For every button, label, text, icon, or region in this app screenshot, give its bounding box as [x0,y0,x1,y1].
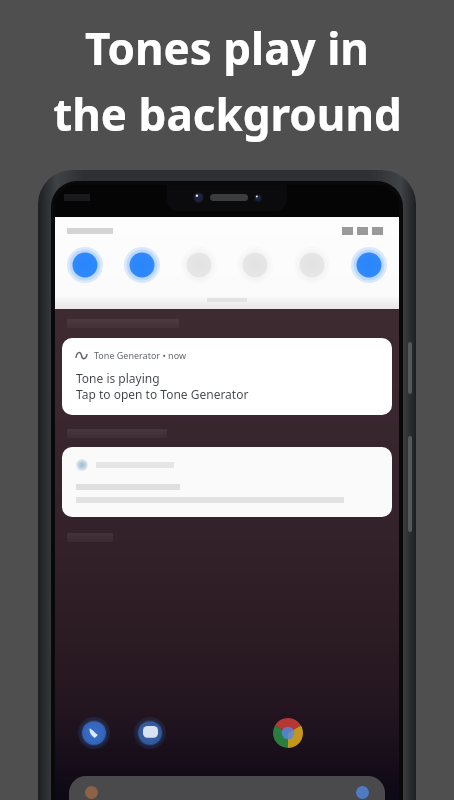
staticText: the background [53,84,402,144]
staticText: Tones play in [85,18,369,78]
staticText: Tap to open to Tone Generator [76,386,249,402]
button[interactable]: App [77,716,111,750]
button[interactable]: Quick setting [349,245,389,285]
button[interactable]: Quick setting [179,245,219,285]
button[interactable]: Chrome [271,716,305,750]
staticText: Tone is playing [76,370,160,386]
button[interactable]: App [133,716,167,750]
button[interactable]: Quick setting [65,245,105,285]
button[interactable]: Quick setting [292,245,332,285]
button[interactable]: Search [69,776,385,800]
staticText: Tone Generator • now [94,349,187,361]
button[interactable]: Quick setting [122,245,162,285]
button[interactable]: Tone Generator • now [62,338,392,415]
button[interactable]: Quick setting [235,245,275,285]
button[interactable]: Notification [62,447,392,517]
